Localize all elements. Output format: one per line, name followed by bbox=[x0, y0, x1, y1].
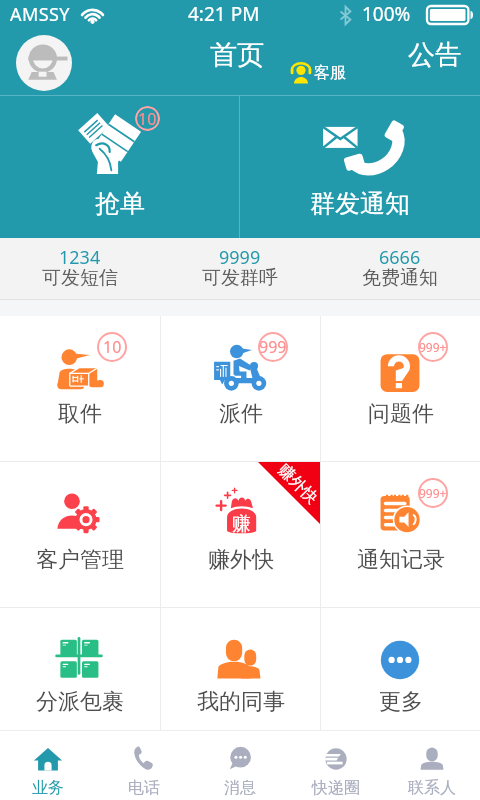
staticText: 我的同事 bbox=[197, 688, 285, 716]
staticText: 赚外快 bbox=[274, 460, 322, 508]
button[interactable]: 分派包裹 bbox=[0, 608, 160, 730]
staticText: 通知记录 bbox=[357, 546, 445, 574]
staticText: 999+ bbox=[419, 485, 447, 501]
staticText: 派件 bbox=[219, 400, 263, 428]
staticText: 9999 bbox=[219, 245, 261, 270]
button[interactable]: 1234 bbox=[0, 238, 160, 300]
staticText: 10 bbox=[103, 336, 122, 358]
staticText: 免费通知 bbox=[362, 266, 438, 290]
button[interactable]: 9999 bbox=[160, 238, 320, 300]
button[interactable]: Profile bbox=[16, 35, 72, 91]
staticText: 抢单 bbox=[95, 188, 145, 219]
staticText: 赚外快 bbox=[208, 546, 274, 574]
button[interactable]: 客服 bbox=[290, 62, 346, 84]
button[interactable]: 10 bbox=[0, 316, 160, 461]
staticText: 999 bbox=[259, 336, 287, 358]
button[interactable]: 首页 bbox=[210, 38, 264, 72]
staticText: 快递圈 bbox=[312, 778, 360, 798]
button[interactable]: 我的同事 bbox=[161, 608, 320, 730]
staticText: 赚 bbox=[232, 512, 251, 536]
staticText: 联系人 bbox=[408, 778, 456, 798]
staticText: 分派包裹 bbox=[36, 688, 124, 716]
button[interactable]: 群发通知 bbox=[240, 96, 480, 238]
staticText: 群发通知 bbox=[310, 188, 410, 219]
button[interactable]: 赚 bbox=[161, 462, 320, 607]
staticText: 电话 bbox=[128, 778, 160, 798]
staticText: 999+ bbox=[419, 339, 447, 355]
button[interactable]: 电话 bbox=[96, 731, 192, 799]
button[interactable]: 999+ bbox=[321, 462, 480, 607]
button[interactable]: 消息 bbox=[192, 731, 288, 799]
staticText: 客户管理 bbox=[36, 546, 124, 574]
button[interactable]: 999 bbox=[161, 316, 320, 461]
staticText: 问题件 bbox=[368, 400, 434, 428]
staticText: 10 bbox=[138, 108, 157, 130]
staticText: 4:21 PM bbox=[188, 1, 260, 27]
staticText: 1234 bbox=[59, 245, 101, 270]
button[interactable]: 业务 bbox=[0, 731, 96, 799]
staticText: 取件 bbox=[58, 400, 102, 428]
staticText: 客服 bbox=[314, 63, 346, 83]
staticText: 更多 bbox=[379, 688, 423, 716]
button[interactable]: 999+ bbox=[321, 316, 480, 461]
staticText: 可发短信 bbox=[42, 266, 118, 290]
staticText: AMSSY bbox=[10, 2, 70, 27]
staticText: 业务 bbox=[32, 778, 64, 798]
button[interactable]: 联系人 bbox=[384, 731, 480, 799]
button[interactable]: 客户管理 bbox=[0, 462, 160, 607]
button[interactable]: 更多 bbox=[321, 608, 480, 730]
staticText: 可发群呼 bbox=[202, 266, 278, 290]
button[interactable]: 6666 bbox=[320, 238, 480, 300]
button[interactable]: 10 bbox=[0, 96, 239, 238]
button[interactable]: 公告 bbox=[408, 38, 462, 72]
staticText: 消息 bbox=[224, 778, 256, 798]
staticText: 6666 bbox=[379, 245, 421, 270]
staticText: 100% bbox=[362, 1, 411, 27]
button[interactable]: 快递圈 bbox=[288, 731, 384, 799]
